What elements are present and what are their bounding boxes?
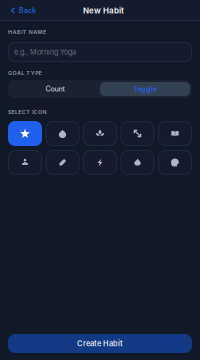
staticText: GOAL TYPE bbox=[8, 70, 42, 76]
staticText: SELECT ICON bbox=[8, 109, 46, 115]
button[interactable]: Select icon bbox=[83, 150, 117, 175]
staticText: Count bbox=[45, 85, 64, 93]
button[interactable]: Toggle bbox=[100, 82, 190, 96]
staticText: Create Habit bbox=[77, 339, 123, 348]
button[interactable]: Back bbox=[0, 0, 42, 21]
staticText: New Habit bbox=[83, 6, 124, 15]
staticText: Back bbox=[19, 6, 36, 15]
staticText: HABIT NAME bbox=[8, 29, 46, 35]
button[interactable]: Select icon bbox=[83, 121, 117, 146]
button[interactable]: Select icon bbox=[120, 121, 154, 146]
button[interactable]: Count bbox=[10, 82, 100, 96]
button[interactable]: Select icon bbox=[158, 121, 192, 146]
button[interactable]: Select icon bbox=[45, 121, 79, 146]
staticText: e.g., Morning Yoga bbox=[14, 48, 76, 56]
button[interactable]: Create Habit bbox=[8, 334, 192, 353]
button[interactable]: Select icon bbox=[158, 150, 192, 175]
button[interactable]: Select icon bbox=[8, 121, 42, 146]
button[interactable]: Select icon bbox=[8, 150, 42, 175]
button[interactable]: Select icon bbox=[45, 150, 79, 175]
staticText: Toggle bbox=[133, 85, 157, 93]
button[interactable]: Select icon bbox=[120, 150, 154, 175]
